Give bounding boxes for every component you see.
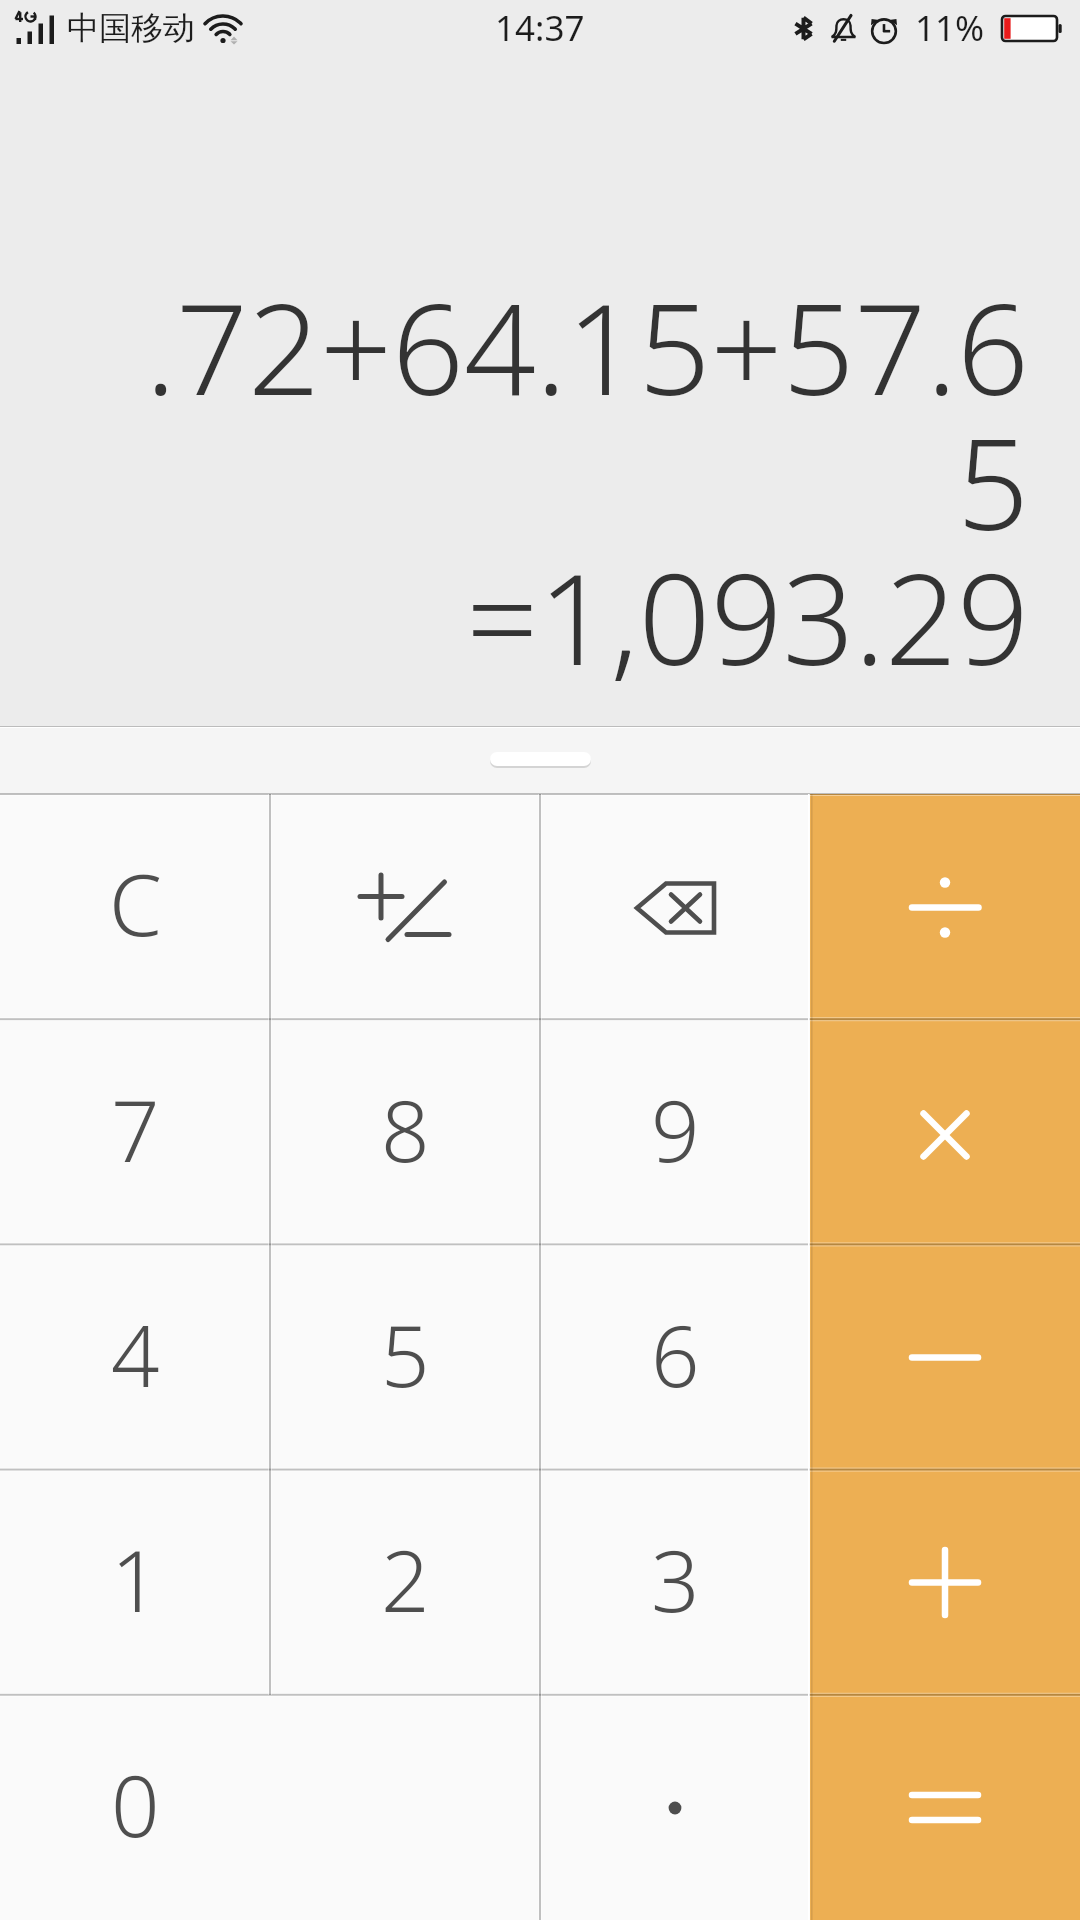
staticText: 5	[381, 1296, 430, 1412]
staticText: 4	[111, 1296, 160, 1412]
button[interactable]: Plus	[810, 1470, 1080, 1695]
button[interactable]: 3	[540, 1470, 810, 1695]
staticText: 7	[111, 1071, 160, 1187]
staticText: 1	[111, 1521, 160, 1637]
button[interactable]: Clear	[0, 794, 270, 1020]
button[interactable]: 9	[540, 1020, 810, 1245]
staticText: 0	[111, 1746, 160, 1862]
button[interactable]: Decimal point	[540, 1695, 810, 1920]
staticText: 6	[651, 1296, 700, 1412]
staticText: 2	[381, 1521, 430, 1637]
staticText: 11%	[915, 4, 985, 52]
staticText: 14:37	[495, 4, 585, 52]
button[interactable]: Multiply	[810, 1020, 1080, 1245]
button[interactable]: Divide	[810, 794, 1080, 1020]
button[interactable]: 7	[0, 1020, 270, 1245]
button[interactable]: 6	[540, 1245, 810, 1470]
button[interactable]: Backspace	[540, 794, 810, 1020]
staticText: C	[109, 845, 162, 961]
staticText: .72+64.15+57.6 5 =1,093.29	[0, 260, 1029, 702]
button[interactable]: 8	[270, 1020, 540, 1245]
button[interactable]: Plus minus	[270, 794, 540, 1020]
button[interactable]: 4	[0, 1245, 270, 1470]
button[interactable]: 2	[270, 1470, 540, 1695]
staticText: 8	[381, 1071, 430, 1187]
button[interactable]: Minus	[810, 1245, 1080, 1470]
button[interactable]: Equals	[810, 1695, 1080, 1920]
staticText: 9	[651, 1071, 700, 1187]
button[interactable]: 1	[0, 1470, 270, 1695]
staticText: 中国移动	[67, 8, 195, 48]
staticText: 3	[651, 1521, 700, 1637]
button[interactable]: 0	[0, 1695, 540, 1920]
button[interactable]: 5	[270, 1245, 540, 1470]
